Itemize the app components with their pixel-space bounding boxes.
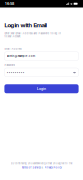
staticText: Privacy Policy [44, 166, 61, 169]
staticText: to your Account. [4, 35, 21, 38]
staticText: admin@example.com [7, 54, 35, 58]
staticText: ••••••••• [7, 71, 25, 74]
button[interactable]: Terms of Service [21, 166, 40, 169]
staticText: Login [37, 87, 46, 91]
staticText: By continuing you acknowledge that you a… [11, 162, 72, 165]
staticText: Email Address [4, 47, 21, 50]
staticText: Enter your Email Address and Password to… [4, 32, 60, 35]
staticText: 16:58 [5, 2, 14, 6]
staticText: Terms of Service [21, 166, 40, 169]
button[interactable]: Privacy Policy [44, 166, 61, 169]
staticText: Password [4, 64, 15, 67]
button[interactable]: Login [4, 84, 79, 93]
staticText: & [41, 166, 43, 169]
staticText: Login with Email [4, 21, 46, 29]
